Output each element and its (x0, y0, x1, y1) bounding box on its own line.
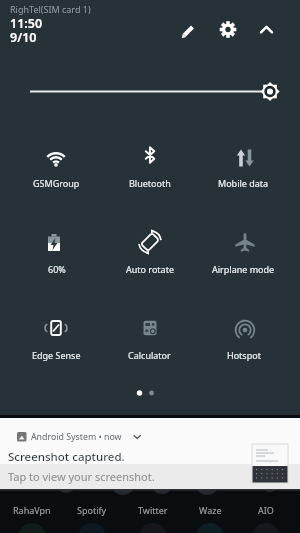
button[interactable]: Hotspot (197, 302, 290, 368)
button[interactable] (22, 78, 280, 105)
staticText: Android System • now (31, 431, 122, 443)
button[interactable]: Bluetooth (103, 130, 196, 196)
button[interactable]: Airplane mode (197, 216, 290, 282)
button[interactable]: Android System • now (0, 418, 300, 489)
button[interactable]: 60% (10, 216, 103, 282)
staticText: Waze (199, 504, 222, 516)
staticText: Tap to view your screenshot. (8, 469, 155, 484)
staticText: 11:50 (10, 15, 43, 32)
button[interactable]: GSMGroup (10, 130, 103, 196)
button[interactable]: Edge Sense (10, 302, 103, 368)
staticText: Mobile data (218, 177, 269, 189)
staticText: Twitter (138, 504, 168, 516)
staticText: 9/10 (10, 29, 37, 46)
button[interactable] (176, 19, 202, 44)
staticText: RahaVpn (13, 504, 51, 516)
button[interactable]: Twitter (123, 502, 183, 517)
staticText: Calculator (128, 349, 171, 361)
button[interactable] (253, 18, 279, 41)
staticText: RighTel(SIM card 1) (10, 3, 91, 15)
staticText: 60% (48, 263, 66, 275)
button[interactable]: AIO (236, 502, 296, 517)
staticText: Hotspot (227, 349, 261, 361)
staticText: GSMGroup (33, 177, 80, 189)
staticText: Edge Sense (32, 349, 81, 361)
staticText: Spotify (77, 504, 107, 516)
button[interactable]: Mobile data (197, 130, 290, 196)
button[interactable]: Waze (180, 502, 240, 517)
button[interactable] (216, 17, 241, 42)
staticText: AIO (258, 504, 274, 516)
button[interactable]: Auto rotate (103, 216, 196, 282)
staticText: Auto rotate (126, 263, 174, 275)
button[interactable]: Spotify (62, 502, 122, 517)
staticText: Screenshot captured. (8, 449, 125, 465)
staticText: Bluetooth (129, 177, 171, 189)
staticText: Airplane mode (212, 263, 275, 275)
button[interactable]: RahaVpn (2, 502, 62, 517)
button[interactable]: Calculator (103, 302, 196, 368)
